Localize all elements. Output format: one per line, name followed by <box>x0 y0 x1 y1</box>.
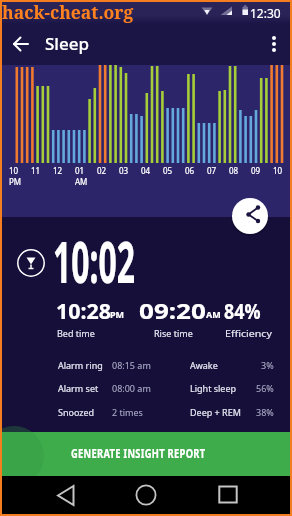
staticText: 12:30 <box>250 5 281 21</box>
staticText: Rise time <box>154 327 193 339</box>
staticText: PM <box>110 308 125 320</box>
staticText: 07 <box>207 165 217 176</box>
staticText: Efficiency <box>225 327 272 339</box>
staticText: Snoozed <box>58 406 95 418</box>
staticText: AM <box>75 176 88 187</box>
staticText: hack-cheat.org <box>2 0 134 24</box>
staticText: 11 <box>31 165 41 176</box>
button[interactable] <box>262 32 286 56</box>
button[interactable] <box>50 480 80 510</box>
staticText: 38% <box>256 406 274 418</box>
staticText: 09 <box>251 165 261 176</box>
staticText: Deep + REM <box>190 406 241 418</box>
staticText: 08:15 am <box>112 359 151 371</box>
staticText: 10:02 <box>53 222 135 300</box>
staticText: 09:20 <box>139 297 206 326</box>
staticText: Awake <box>190 359 218 371</box>
staticText: PM <box>9 176 22 187</box>
staticText: 3% <box>261 359 274 371</box>
button[interactable] <box>213 480 243 510</box>
staticText: 56% <box>256 382 274 394</box>
staticText: 02 <box>97 165 107 176</box>
staticText: 05 <box>163 165 173 176</box>
staticText: 01 <box>75 165 85 176</box>
button[interactable] <box>10 32 34 56</box>
staticText: GENERATE INSIGHT REPORT <box>71 444 206 462</box>
staticText: Light sleep <box>190 382 237 394</box>
button[interactable]: GENERATE INSIGHT REPORT <box>0 432 292 476</box>
staticText: 12 <box>53 165 63 176</box>
staticText: Bed time <box>57 327 95 339</box>
button[interactable]: Alarm set <box>0 380 292 400</box>
button[interactable] <box>232 198 268 234</box>
button[interactable]: Alarm ring <box>0 357 292 377</box>
staticText: 04 <box>141 165 151 176</box>
staticText: AM <box>206 308 221 320</box>
button[interactable] <box>131 480 161 510</box>
staticText: 10 <box>273 165 283 176</box>
staticText: 08 <box>229 165 239 176</box>
staticText: 08:00 am <box>112 382 151 394</box>
staticText: Alarm ring <box>58 359 103 371</box>
staticText: Alarm set <box>58 382 99 394</box>
staticText: 03 <box>119 165 129 176</box>
staticText: 10:28 <box>56 297 111 326</box>
staticText: 10 <box>9 165 19 176</box>
button[interactable]: Snoozed <box>0 404 292 424</box>
staticText: 2 times <box>112 406 143 418</box>
staticText: 06 <box>185 165 195 176</box>
staticText: Sleep <box>45 32 89 55</box>
staticText: 84% <box>224 297 260 326</box>
